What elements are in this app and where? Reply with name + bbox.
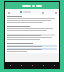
- button[interactable]: More options: [54, 11, 57, 14]
- button[interactable]: Home: [19, 63, 23, 68]
- button[interactable]: Back: [8, 63, 12, 68]
- button[interactable]: Menu: [7, 11, 10, 14]
- button[interactable]: Apps: [41, 63, 45, 68]
- button[interactable]: [7, 45, 57, 47]
- button[interactable]: Share: [41, 11, 44, 14]
- button[interactable]: Recents: [30, 63, 34, 68]
- button[interactable]: Search field: [23, 11, 31, 13]
- button[interactable]: [7, 34, 55, 36]
- button[interactable]: Settings: [52, 63, 56, 68]
- button[interactable]: [7, 48, 57, 50]
- button[interactable]: [5, 2, 59, 9]
